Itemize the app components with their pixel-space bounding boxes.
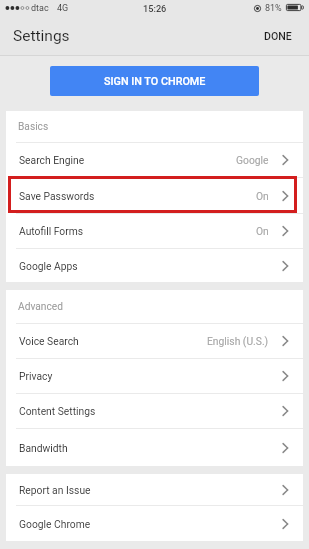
staticText: SIGN IN TO CHROME — [104, 75, 206, 88]
staticText: Voice Search — [19, 335, 79, 347]
staticText: Google Chrome — [19, 518, 91, 530]
button[interactable]: Privacy — [6, 359, 303, 393]
staticText: Search Engine — [19, 154, 85, 166]
staticText: On — [256, 190, 269, 202]
button[interactable]: Report an Issue — [6, 474, 303, 505]
staticText: Google — [236, 154, 269, 166]
button[interactable]: Autofill Forms — [6, 214, 303, 248]
staticText: Settings — [13, 27, 70, 45]
staticText: dtac — [31, 3, 49, 14]
staticText: 81% — [265, 3, 282, 14]
button[interactable]: SIGN IN TO CHROME — [50, 66, 259, 96]
staticText: Bandwidth — [19, 442, 68, 454]
staticText: Advanced — [18, 301, 63, 313]
button[interactable]: Google Chrome — [6, 506, 303, 541]
staticText: DONE — [264, 30, 292, 42]
staticText: Basics — [18, 121, 49, 133]
staticText: Privacy — [19, 370, 53, 382]
button[interactable]: Voice Search — [6, 324, 303, 358]
button[interactable]: Save Passwords — [6, 178, 303, 213]
staticText: Google Apps — [19, 260, 78, 272]
staticText: Report an Issue — [19, 484, 91, 496]
button[interactable]: Bandwidth — [6, 429, 303, 466]
button[interactable]: Content Settings — [6, 394, 303, 428]
staticText: Content Settings — [19, 405, 96, 417]
button[interactable]: Search Engine — [6, 143, 303, 177]
staticText: 15:26 — [143, 3, 167, 14]
staticText: 4G — [57, 3, 69, 14]
staticText: English (U.S.) — [207, 335, 269, 347]
staticText: Autofill Forms — [19, 225, 84, 237]
button[interactable]: DONE — [262, 22, 294, 50]
staticText: On — [256, 225, 269, 237]
staticText: Save Passwords — [19, 190, 95, 202]
button[interactable]: Google Apps — [6, 249, 303, 282]
